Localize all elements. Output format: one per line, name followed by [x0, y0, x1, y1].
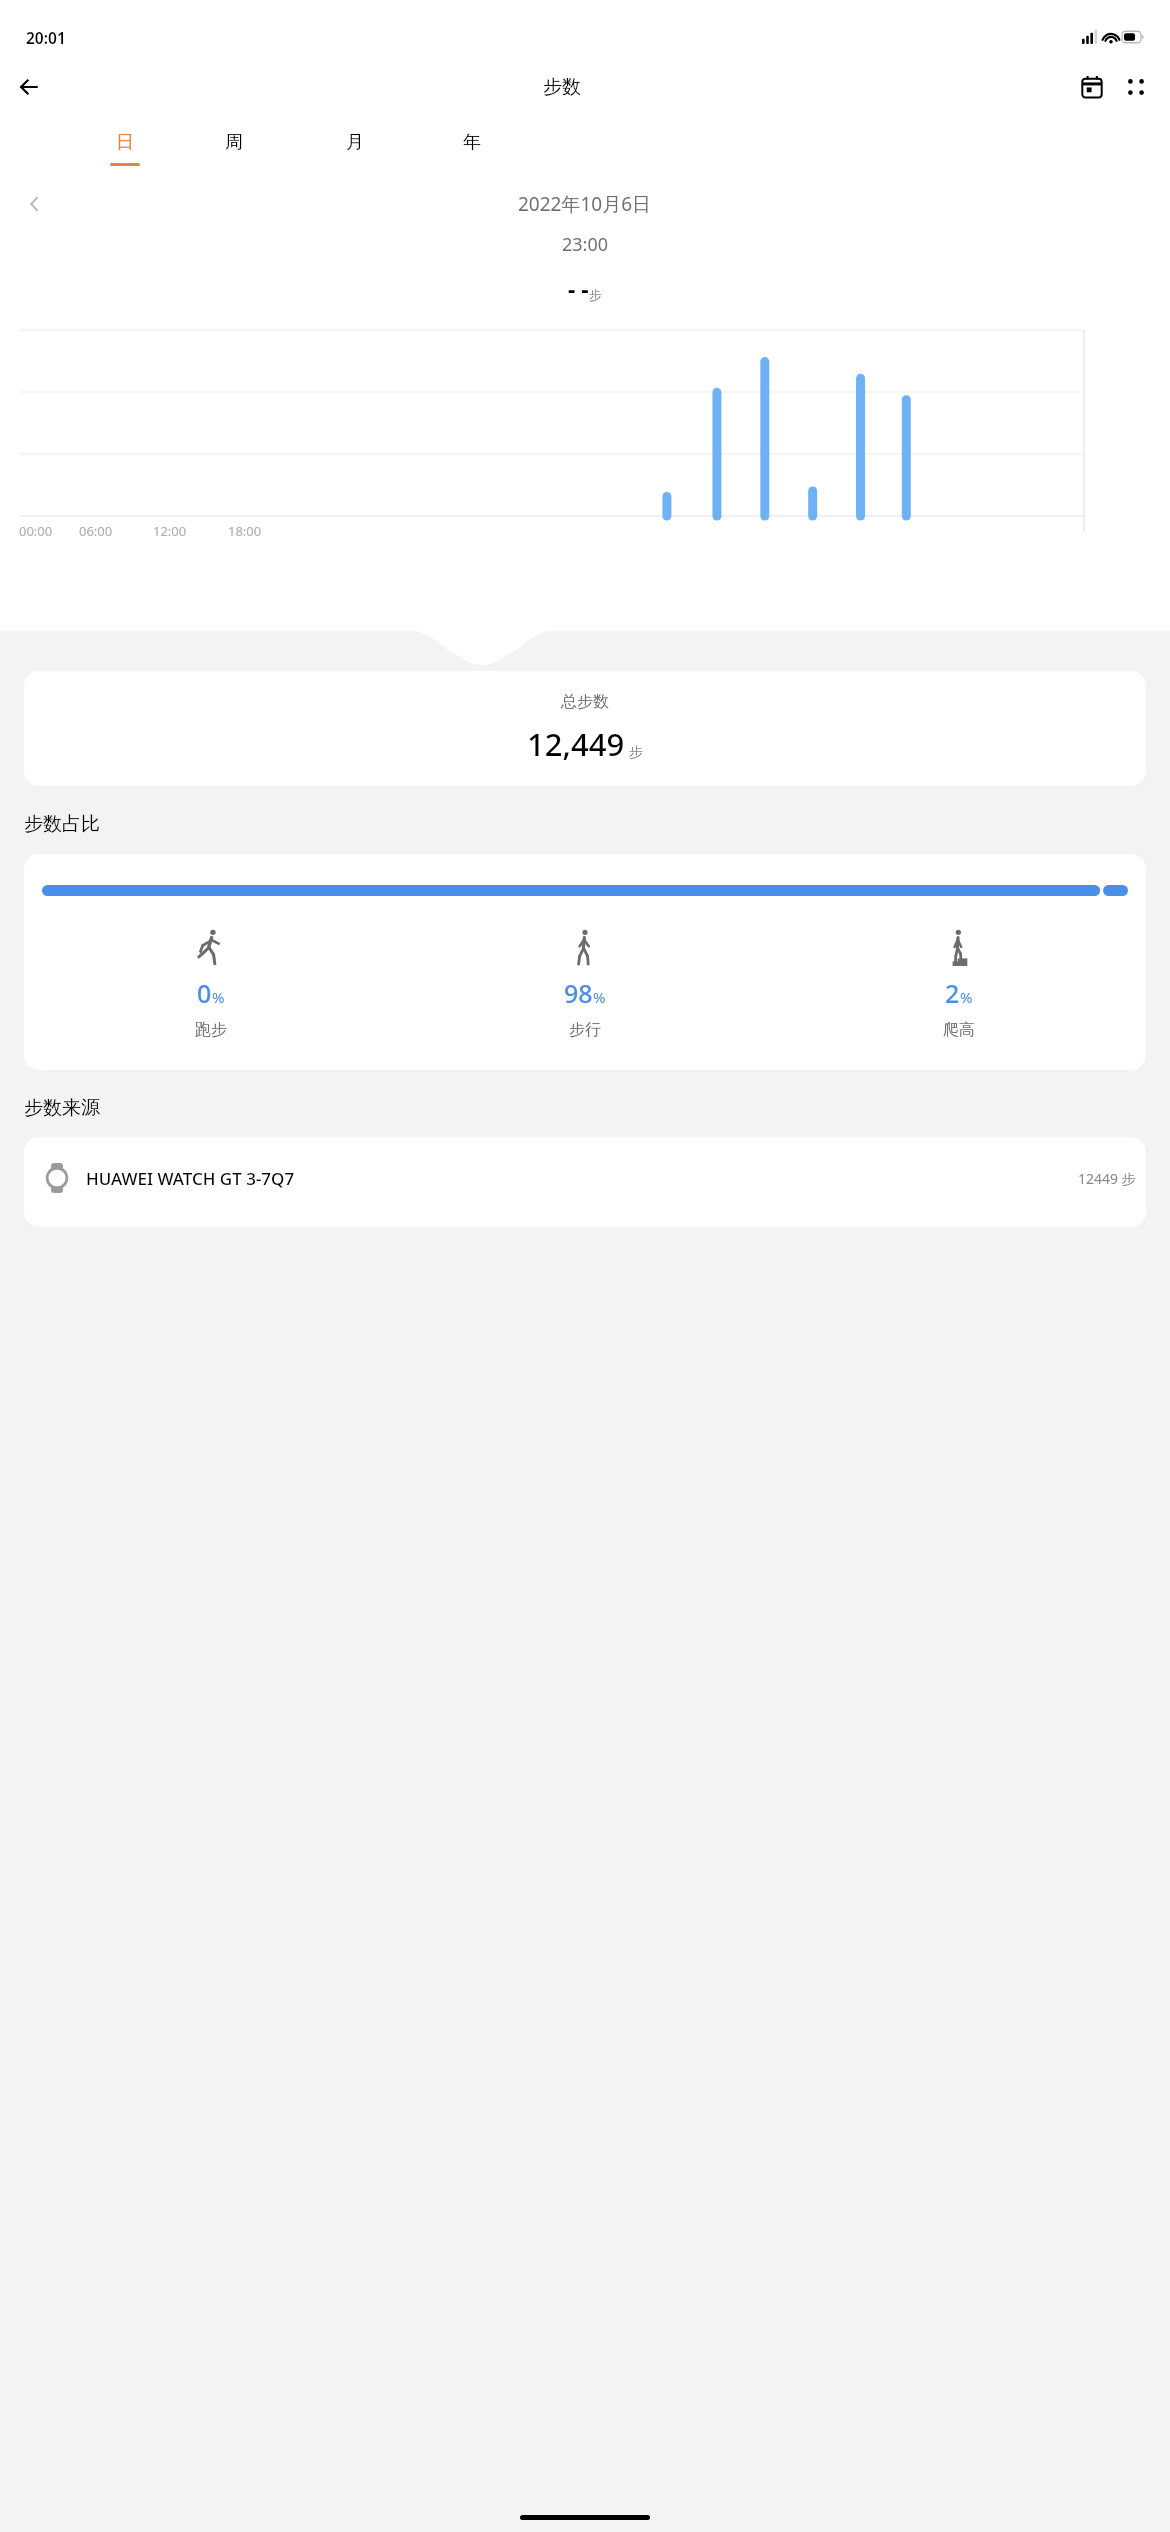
staticText: %: [212, 987, 225, 1007]
button[interactable]: 总步数: [24, 671, 1146, 786]
staticText: 2022年10月6日: [518, 191, 652, 217]
button[interactable]: 周: [199, 131, 269, 175]
staticText: %: [960, 987, 973, 1007]
staticText: 年: [463, 131, 481, 154]
staticText: 跑步: [195, 1020, 227, 1040]
staticText: 步: [629, 744, 643, 762]
button[interactable]: Calendar: [1070, 65, 1114, 109]
button[interactable]: Back: [10, 65, 54, 109]
button[interactable]: More options: [1114, 65, 1158, 109]
staticText: HUAWEI WATCH GT 3-7Q7: [86, 1167, 295, 1190]
staticText: 20:01: [26, 27, 66, 47]
button[interactable]: 年: [437, 131, 507, 175]
staticText: 周: [225, 131, 243, 154]
staticText: 爬高: [943, 1020, 975, 1040]
staticText: 日: [116, 131, 134, 154]
staticText: 月: [346, 131, 364, 154]
staticText: 步数占比: [24, 812, 100, 836]
button[interactable]: Previous day: [14, 187, 56, 221]
staticText: 0: [197, 976, 212, 1010]
button[interactable]: 日: [90, 131, 160, 175]
staticText: %: [593, 987, 606, 1007]
button[interactable]: 2: [772, 928, 1146, 1040]
button[interactable]: 月: [320, 131, 390, 175]
button[interactable]: HUAWEI WATCH GT 3-7Q7: [24, 1137, 1146, 1227]
staticText: 06:00: [79, 522, 113, 540]
button[interactable]: 0: [24, 854, 1146, 1070]
staticText: 12:00: [153, 522, 187, 540]
button[interactable]: 98: [398, 928, 772, 1040]
staticText: 步数: [543, 75, 581, 99]
staticText: 00:00: [19, 522, 53, 540]
staticText: 12449 步: [1078, 1169, 1136, 1188]
staticText: 18:00: [228, 522, 262, 540]
staticText: 12,449: [527, 723, 625, 765]
staticText: 总步数: [561, 692, 609, 712]
button[interactable]: 0: [24, 928, 398, 1040]
staticText: 步行: [569, 1020, 601, 1040]
staticText: 2: [945, 976, 960, 1010]
staticText: 98: [564, 976, 593, 1010]
staticText: - -: [568, 273, 589, 304]
staticText: 23:00: [0, 232, 1170, 257]
staticText: 步数来源: [24, 1096, 100, 1120]
staticText: 步: [589, 287, 602, 303]
